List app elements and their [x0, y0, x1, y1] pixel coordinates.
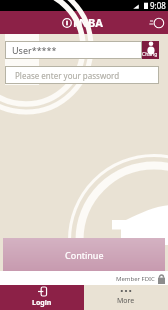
staticText: Change [142, 51, 159, 59]
button[interactable]: Please enter your password [5, 66, 159, 84]
staticText: 9:08 [150, 0, 166, 11]
button[interactable]: Continue [3, 238, 165, 271]
staticText: Please enter your password [15, 70, 120, 81]
staticText: FNBA [73, 15, 103, 30]
button[interactable]: Change [142, 41, 159, 59]
button[interactable]: Login [0, 285, 84, 310]
staticText: Member FDIC [116, 275, 155, 283]
staticText: User***** [12, 44, 57, 56]
button[interactable]: User***** [5, 41, 142, 59]
button[interactable]: Rates [146, 12, 168, 34]
button[interactable]: More [84, 285, 168, 310]
staticText: Login [32, 298, 52, 308]
staticText: More [117, 296, 135, 306]
staticText: Continue [65, 249, 104, 261]
